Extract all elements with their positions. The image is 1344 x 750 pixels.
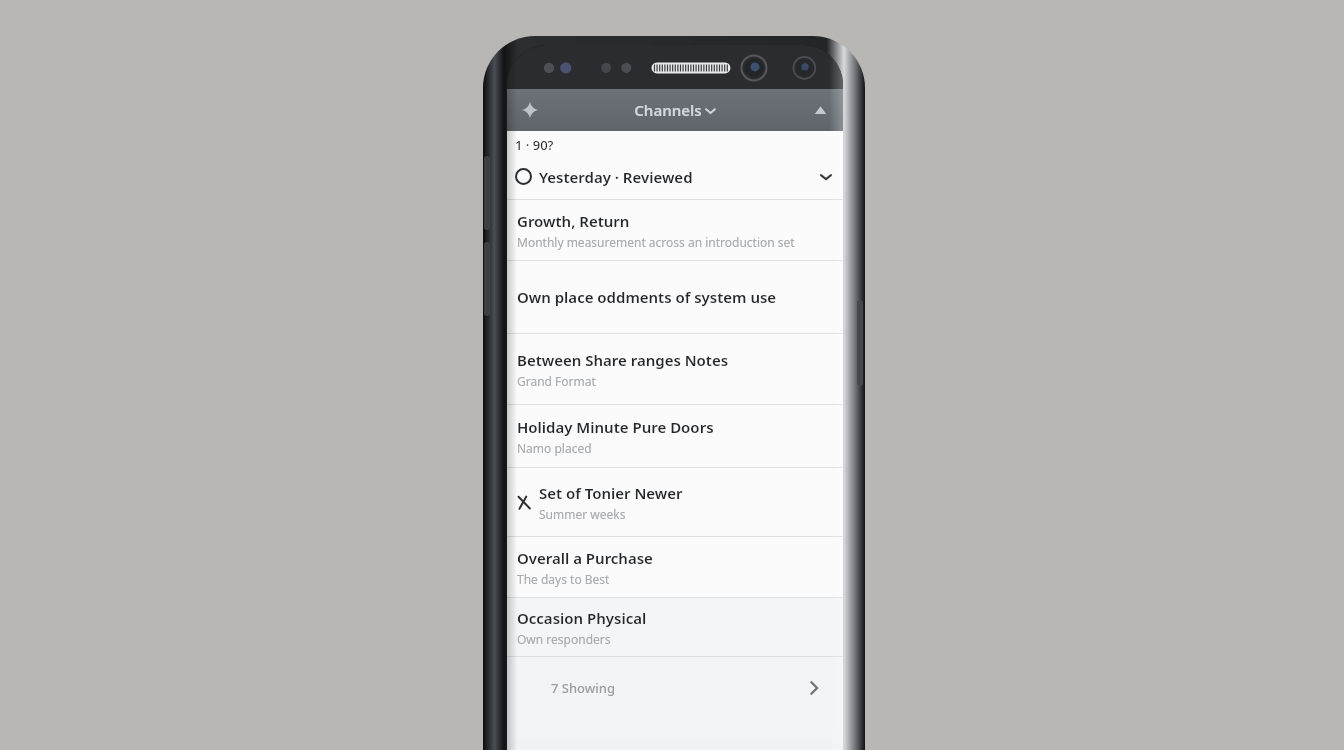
staticText: Yesterday · Reviewed bbox=[539, 167, 693, 187]
staticText: Overall a Purchase bbox=[517, 548, 653, 568]
staticText: Monthly measurement across an introducti… bbox=[517, 234, 795, 250]
staticText: Occasion Physical bbox=[517, 608, 647, 628]
button[interactable]: 1 · 90? bbox=[507, 131, 843, 199]
staticText: Own responders bbox=[517, 631, 611, 647]
staticText: Between Share ranges Notes bbox=[517, 350, 729, 370]
button[interactable]: Channels bbox=[628, 97, 722, 123]
staticText: The days to Best bbox=[517, 571, 610, 587]
staticText: Growth, Return bbox=[517, 211, 630, 231]
button[interactable]: Between Share ranges Notes bbox=[507, 334, 843, 404]
staticText: 1 · 90? bbox=[515, 136, 554, 154]
button[interactable]: 7 Showing bbox=[507, 657, 843, 719]
button[interactable]: Occasion Physical bbox=[507, 598, 843, 656]
button[interactable]: Overall a Purchase bbox=[507, 537, 843, 597]
staticText: Own place oddments of system use bbox=[517, 287, 777, 307]
button[interactable]: Own place oddments of system use bbox=[507, 261, 843, 333]
button[interactable]: Growth, Return bbox=[507, 200, 843, 260]
staticText: Set of Tonier Newer bbox=[539, 483, 683, 503]
staticText: Summer weeks bbox=[539, 506, 626, 522]
button[interactable]: Upload bbox=[803, 93, 837, 127]
staticText: Namo placed bbox=[517, 440, 592, 456]
button[interactable]: Set of Tonier Newer bbox=[507, 468, 843, 536]
staticText: Holiday Minute Pure Doors bbox=[517, 417, 714, 437]
button[interactable]: Holiday Minute Pure Doors bbox=[507, 405, 843, 467]
staticText: Channels bbox=[634, 100, 702, 120]
button[interactable]: Assist bbox=[513, 93, 547, 127]
staticText: Grand Format bbox=[517, 373, 596, 389]
staticText: 7 Showing bbox=[551, 679, 803, 697]
